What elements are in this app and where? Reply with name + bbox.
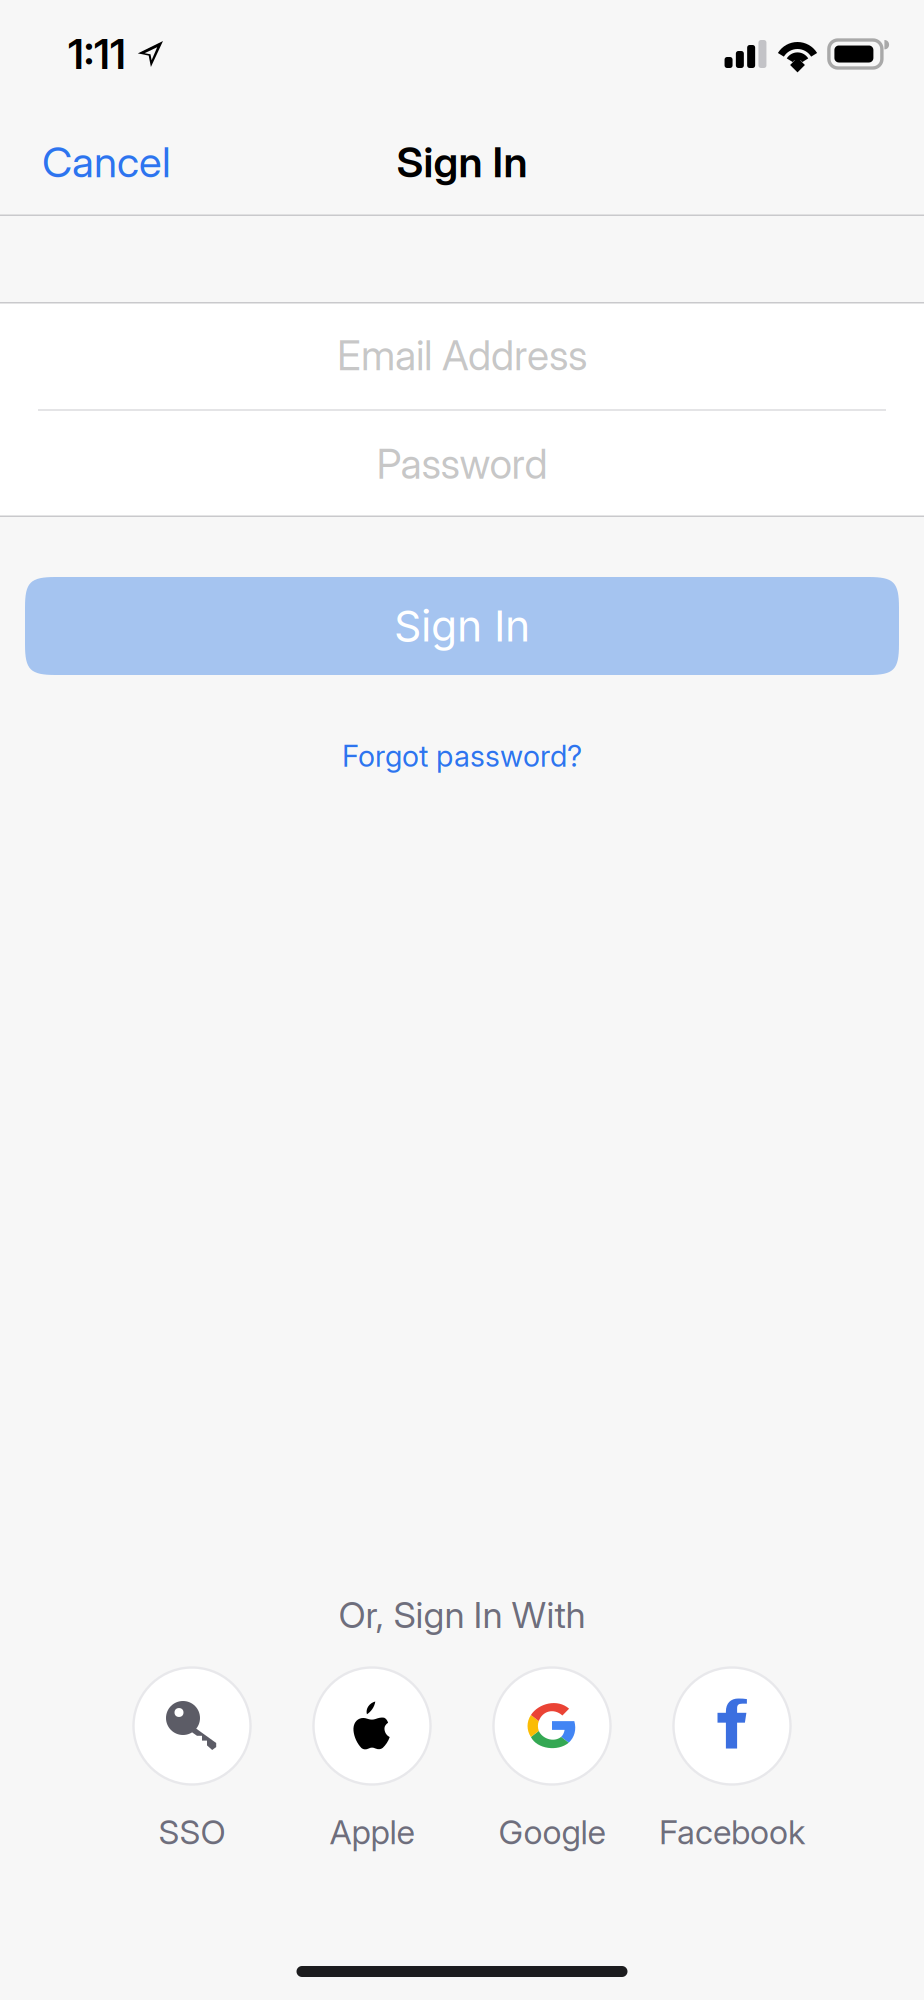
staticText: SSO [158, 1812, 225, 1852]
button[interactable]: Apple [282, 1667, 462, 1879]
staticText: Cancel [42, 137, 171, 187]
staticText: Google [498, 1812, 605, 1852]
staticText: Apple [329, 1812, 414, 1852]
staticText: Sign In [396, 137, 527, 187]
button[interactable]: Cancel [0, 108, 191, 216]
button[interactable]: Forgot password? [342, 732, 582, 780]
staticText: Email Address [337, 331, 587, 380]
button[interactable]: Sign In [25, 577, 899, 675]
staticText: Facebook [659, 1812, 805, 1852]
button[interactable]: SSO [102, 1667, 282, 1879]
staticText: Password [376, 439, 547, 489]
button[interactable]: Facebook [642, 1667, 822, 1879]
staticText: Or, Sign In With [338, 1593, 585, 1637]
staticText: Sign In [394, 600, 530, 652]
button[interactable]: Google [462, 1667, 642, 1879]
staticText: 1:11 [68, 29, 126, 79]
staticText: Forgot password? [342, 738, 582, 774]
